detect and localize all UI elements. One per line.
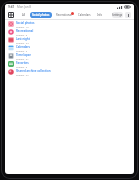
- staticText: Social photos: [32, 13, 50, 17]
- button[interactable]: Info: [95, 12, 105, 18]
- button[interactable]: Time lapse: [5, 52, 134, 60]
- button[interactable]: Recreational: [5, 28, 134, 36]
- button[interactable]: Settings: [112, 12, 123, 18]
- staticText: Settings: [112, 13, 123, 17]
- staticText: Recreational: [16, 29, 34, 33]
- button[interactable]: More options: [125, 12, 131, 18]
- staticText: Shared · 5: [16, 65, 28, 68]
- staticText: Calendars: [78, 13, 91, 17]
- button[interactable]: Menu: [8, 12, 14, 18]
- button[interactable]: Social photos: [30, 12, 52, 18]
- button[interactable]: All: [20, 12, 28, 18]
- staticText: Last night: [16, 37, 30, 41]
- staticText: Social photos: [16, 21, 35, 25]
- staticText: Shared · 34: [16, 41, 29, 44]
- button[interactable]: Favorites: [5, 60, 134, 68]
- staticText: Shared · 47: [16, 73, 29, 76]
- staticText: Calendars: [16, 45, 30, 49]
- staticText: Time lapse: [16, 53, 31, 57]
- staticText: Shared · 8: [16, 33, 28, 36]
- button[interactable]: Last night: [5, 36, 134, 44]
- button[interactable]: Calendars: [5, 44, 134, 52]
- staticText: Info: [97, 13, 103, 17]
- staticText: Shared · 21: [16, 57, 29, 60]
- staticText: Shared archive collection: [16, 69, 51, 73]
- staticText: All: [22, 13, 26, 17]
- button[interactable]: Recreational: [54, 12, 74, 18]
- staticText: Shared · 12: [16, 25, 29, 28]
- button[interactable]: Social photos: [5, 20, 134, 28]
- staticText: Favorites: [16, 61, 29, 65]
- button[interactable]: Shared archive collection: [5, 68, 134, 76]
- staticText: Mon Jan 8: [17, 5, 32, 9]
- staticText: Recreational: [56, 13, 72, 17]
- button[interactable]: Calendars: [76, 12, 93, 18]
- staticText: 9:41: [8, 5, 15, 9]
- staticText: Shared · 3: [16, 49, 28, 52]
